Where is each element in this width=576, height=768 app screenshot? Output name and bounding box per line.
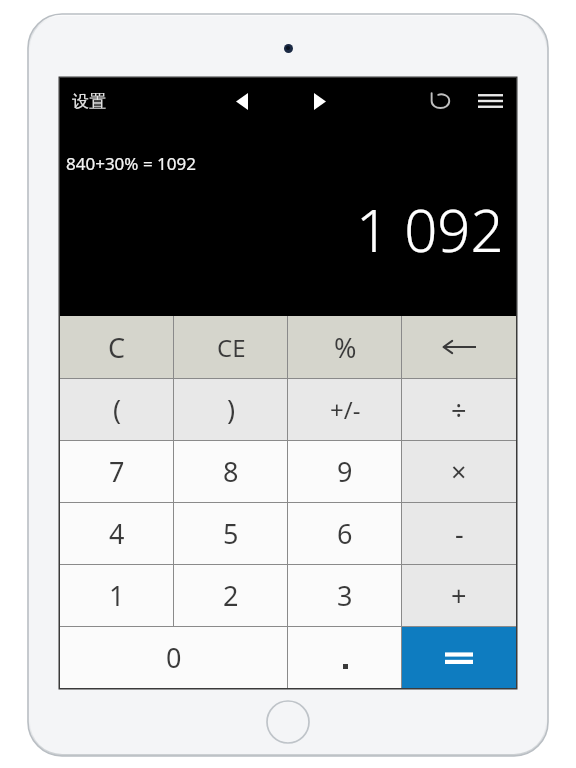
button[interactable]: CE: [174, 316, 288, 378]
staticText: +/-: [330, 393, 361, 426]
button[interactable]: (: [60, 379, 174, 440]
staticText: 3: [337, 577, 353, 614]
button[interactable]: 9: [288, 441, 402, 502]
button[interactable]: %: [288, 316, 402, 378]
button[interactable]: ×: [402, 441, 516, 502]
staticText: C: [108, 329, 126, 366]
staticText: 7: [109, 453, 125, 490]
button[interactable]: Menu: [468, 79, 512, 123]
button[interactable]: Equals: [402, 627, 516, 688]
staticText: 1: [109, 577, 125, 614]
staticText: ÷: [451, 391, 467, 428]
button[interactable]: Next: [298, 79, 342, 123]
button[interactable]: 0: [60, 627, 288, 688]
button[interactable]: 设置: [60, 85, 116, 118]
staticText: 4: [109, 515, 125, 552]
staticText: +: [451, 577, 467, 614]
staticText: 6: [337, 515, 353, 552]
button[interactable]: Undo: [418, 79, 462, 123]
button[interactable]: ): [174, 379, 288, 440]
button[interactable]: 1: [60, 565, 174, 626]
button[interactable]: +: [402, 565, 516, 626]
staticText: ×: [451, 453, 467, 490]
button[interactable]: 5: [174, 503, 288, 564]
staticText: -: [455, 515, 464, 552]
staticText: 8: [223, 453, 239, 490]
staticText: 9: [337, 453, 353, 490]
staticText: 840+30% = 1092: [66, 152, 196, 175]
button[interactable]: Previous: [220, 79, 264, 123]
button[interactable]: 4: [60, 503, 174, 564]
button[interactable]: C: [60, 316, 174, 378]
button[interactable]: 6: [288, 503, 402, 564]
button[interactable]: -: [402, 503, 516, 564]
staticText: 1 092: [356, 190, 504, 269]
staticText: CE: [217, 331, 246, 364]
staticText: (: [113, 391, 122, 428]
button[interactable]: Backspace: [402, 316, 516, 378]
button[interactable]: ÷: [402, 379, 516, 440]
button[interactable]: 8: [174, 441, 288, 502]
staticText: 2: [223, 577, 239, 614]
staticText: ): [227, 391, 236, 428]
button[interactable]: 2: [174, 565, 288, 626]
staticText: %: [334, 329, 357, 366]
button[interactable]: 3: [288, 565, 402, 626]
button[interactable]: [288, 627, 402, 688]
button[interactable]: 7: [60, 441, 174, 502]
button[interactable]: +/-: [288, 379, 402, 440]
staticText: 0: [166, 639, 182, 676]
staticText: 5: [223, 515, 239, 552]
staticText: 设置: [72, 91, 106, 112]
